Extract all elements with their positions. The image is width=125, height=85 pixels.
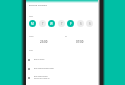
staticText: Block hidden numbers	[34, 76, 48, 78]
button[interactable]: F	[67, 20, 74, 27]
staticText: Blocked numbers	[29, 4, 47, 7]
button[interactable]: Block all contacts	[28, 56, 96, 63]
staticText: Block hidden/unknown numbers	[34, 68, 54, 70]
staticText: F	[70, 22, 72, 26]
staticText: M	[31, 22, 34, 26]
button[interactable]: S	[77, 20, 84, 27]
staticText: W	[50, 22, 53, 26]
staticText: T	[42, 22, 44, 26]
staticText: 23:00	[40, 40, 48, 44]
staticText: 07:00	[76, 40, 84, 44]
button[interactable]: T	[39, 20, 46, 27]
button[interactable]: Block hidden/unknown numbers	[28, 65, 96, 72]
staticText: S	[80, 22, 82, 26]
button[interactable]: 23:00	[26, 40, 62, 44]
staticText: not from your contact list	[34, 78, 50, 80]
button[interactable]: T	[58, 20, 65, 27]
button[interactable]: 07:00	[62, 40, 98, 44]
button[interactable]: W	[48, 20, 55, 27]
button[interactable]: M	[29, 20, 36, 27]
button[interactable]: S	[86, 20, 93, 27]
staticText: S	[89, 22, 91, 26]
staticText: Days	[29, 15, 34, 17]
staticText: Block all contacts	[34, 59, 45, 61]
staticText: T	[61, 22, 63, 26]
staticText: Calls	[29, 49, 33, 51]
staticText: To	[65, 35, 67, 37]
staticText: From	[29, 35, 34, 37]
button[interactable]: Block hidden numbers	[28, 74, 96, 81]
